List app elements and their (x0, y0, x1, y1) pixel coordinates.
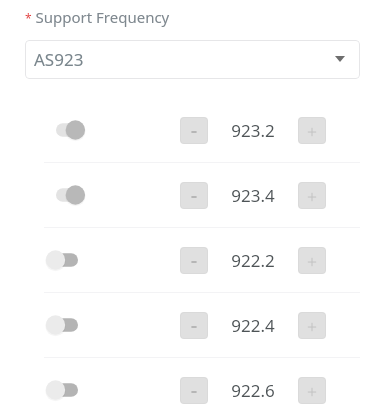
button[interactable]: Increase frequency (298, 377, 326, 404)
button[interactable]: Decrease frequency (180, 182, 208, 209)
button[interactable]: Disable 923.2 (45, 119, 79, 141)
button[interactable]: Increase frequency (298, 117, 326, 144)
staticText: AS923 (34, 48, 84, 71)
button[interactable]: Enable 922.6 (45, 379, 79, 401)
button[interactable]: Enable 922.2 (45, 249, 79, 271)
staticText: 922.4 (213, 314, 293, 337)
button[interactable]: Decrease frequency (180, 377, 208, 404)
staticText: 923.4 (213, 184, 293, 207)
button[interactable]: Increase frequency (298, 182, 326, 209)
button[interactable]: Decrease frequency (180, 312, 208, 339)
button[interactable]: Disable 923.4 (45, 184, 79, 206)
button[interactable]: Decrease frequency (180, 247, 208, 274)
button[interactable]: Enable 922.4 (45, 314, 79, 336)
button[interactable]: Increase frequency (298, 312, 326, 339)
staticText: 923.2 (213, 119, 293, 142)
button[interactable]: Increase frequency (298, 247, 326, 274)
button[interactable]: Decrease frequency (180, 117, 208, 144)
staticText: 922.6 (213, 379, 293, 402)
staticText: * Support Frequency (25, 7, 170, 27)
button[interactable]: AS923 (25, 40, 360, 79)
staticText: 922.2 (213, 249, 293, 272)
